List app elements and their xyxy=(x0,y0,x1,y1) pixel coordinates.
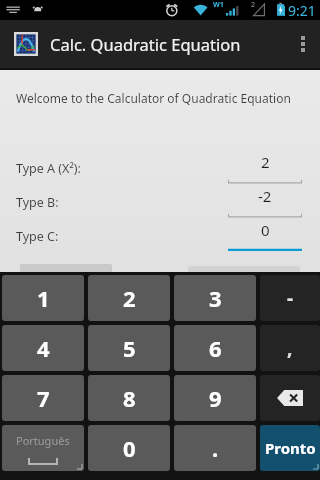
staticText: -2 xyxy=(258,186,272,206)
staticText: Pronto xyxy=(265,438,316,458)
button[interactable]: , xyxy=(260,325,320,371)
button[interactable]: Backspace xyxy=(260,375,320,421)
button[interactable]: 3 xyxy=(174,275,256,321)
button[interactable]: 0 xyxy=(228,218,302,252)
button[interactable]: 7 xyxy=(2,375,84,421)
staticText: 4 xyxy=(37,333,50,363)
staticText: Type B: xyxy=(16,194,59,211)
staticText: 7 xyxy=(37,383,50,413)
staticText: 2 xyxy=(251,0,256,10)
button[interactable]: 1 xyxy=(2,275,84,321)
button[interactable]: - xyxy=(260,275,320,321)
button[interactable]: -2 xyxy=(228,184,302,218)
staticText: 6 xyxy=(209,333,222,363)
button[interactable]: 9 xyxy=(174,375,256,421)
button[interactable]: 0 xyxy=(88,425,170,471)
staticText: 2 xyxy=(261,152,270,172)
button[interactable]: More options xyxy=(286,20,320,68)
button[interactable]: 2 xyxy=(228,150,302,184)
button[interactable]: 2 xyxy=(88,275,170,321)
button[interactable]: 4 xyxy=(2,325,84,371)
staticText: Welcome to the Calculator of Quadratic E… xyxy=(16,90,291,106)
staticText: 19:21 xyxy=(280,1,316,20)
staticText: - xyxy=(287,285,294,311)
button[interactable]: . xyxy=(174,425,256,471)
staticText: 0 xyxy=(261,220,270,240)
staticText: 9 xyxy=(209,383,222,413)
staticText: Type C: xyxy=(16,228,59,245)
staticText: Calc. Quadratic Equation xyxy=(50,33,241,55)
staticText: 2 xyxy=(123,283,136,313)
staticText: Type A (X²): xyxy=(16,160,81,177)
staticText: . xyxy=(212,433,219,463)
staticText: 1 xyxy=(37,283,50,313)
button[interactable]: Pronto xyxy=(260,425,320,471)
staticText: 3 xyxy=(209,283,222,313)
staticText: 0 xyxy=(123,433,136,463)
button[interactable]: 8 xyxy=(88,375,170,421)
button[interactable]: Change language xyxy=(2,425,84,471)
staticText: Português xyxy=(16,433,70,448)
button[interactable]: 5 xyxy=(88,325,170,371)
staticText: W1 xyxy=(213,0,224,10)
staticText: 5 xyxy=(123,333,136,363)
staticText: 8 xyxy=(123,383,136,413)
button[interactable]: 6 xyxy=(174,325,256,371)
staticText: , xyxy=(287,335,293,361)
